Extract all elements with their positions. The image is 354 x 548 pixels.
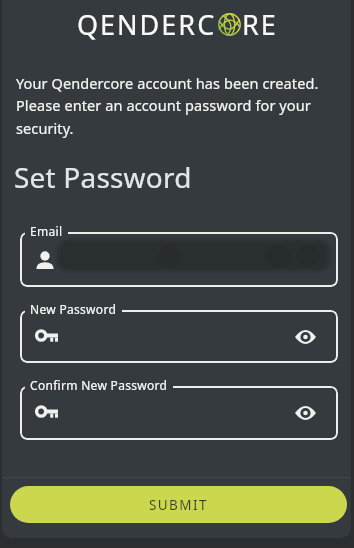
staticText: QENDERC <box>77 6 217 43</box>
button[interactable] <box>286 397 324 429</box>
button[interactable] <box>286 321 324 353</box>
staticText: Email <box>30 223 63 239</box>
button[interactable]: SUBMIT <box>10 486 347 523</box>
staticText: New Password <box>30 301 117 317</box>
staticText: SUBMIT <box>149 496 208 514</box>
staticText: Set Password <box>14 158 192 196</box>
staticText: Your Qendercore account has been created… <box>16 73 319 138</box>
staticText: RE <box>242 6 278 43</box>
staticText: Confirm New Password <box>30 377 168 393</box>
button[interactable] <box>20 386 338 440</box>
button[interactable] <box>20 310 338 363</box>
button[interactable] <box>20 232 338 287</box>
